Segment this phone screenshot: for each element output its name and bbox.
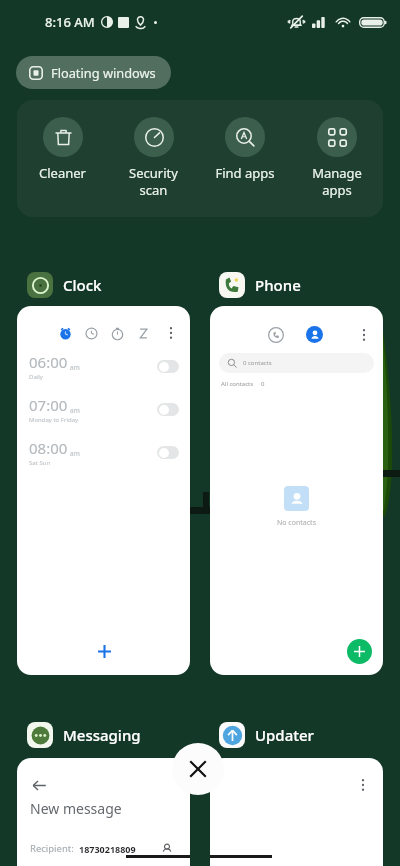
button[interactable]: Back xyxy=(32,778,47,793)
button[interactable]: Manage apps xyxy=(291,100,383,217)
staticText: All contacts xyxy=(221,380,254,388)
button[interactable]: Alarm xyxy=(17,306,190,675)
button[interactable]: 07:00 xyxy=(17,388,190,431)
staticText: Sat Sun xyxy=(29,459,51,467)
staticText: 18730218809 xyxy=(79,843,136,855)
button[interactable]: Dial pad xyxy=(268,327,284,343)
button[interactable]: More options xyxy=(210,758,383,866)
button[interactable]: Toggle alarm xyxy=(157,403,179,416)
button[interactable]: Alarm xyxy=(59,327,72,340)
staticText: Security scan xyxy=(129,164,178,199)
button[interactable]: Toggle alarm xyxy=(157,446,179,459)
staticText: 08:00 xyxy=(29,438,68,458)
button[interactable]: Messaging xyxy=(27,721,141,748)
staticText: Phone xyxy=(255,275,301,295)
staticText: 07:00 xyxy=(29,395,68,415)
staticText: Find apps xyxy=(215,164,275,182)
staticText: Cleaner xyxy=(39,164,86,182)
button[interactable]: Back xyxy=(17,758,190,866)
staticText: am xyxy=(70,363,80,372)
staticText: 0 xyxy=(261,380,265,388)
staticText: New message xyxy=(30,799,122,818)
button[interactable]: Security scan xyxy=(108,100,199,217)
staticText: No contacts xyxy=(277,518,316,528)
staticText: Daily xyxy=(29,373,43,381)
staticText: Floating windows xyxy=(51,64,156,81)
button[interactable]: More options xyxy=(357,328,371,342)
button[interactable]: Stopwatch xyxy=(111,327,124,340)
button[interactable]: 06:00 xyxy=(17,345,190,388)
staticText: 06:00 xyxy=(29,352,68,372)
button[interactable]: Close all xyxy=(172,743,224,795)
staticText: Updater xyxy=(255,725,314,745)
button[interactable]: Cleaner xyxy=(17,100,108,217)
button[interactable]: Clock xyxy=(27,271,102,298)
button[interactable]: Floating windows xyxy=(16,56,171,89)
staticText: Clock xyxy=(63,275,102,295)
staticText: am xyxy=(70,449,80,458)
button[interactable]: Dial pad xyxy=(210,306,383,675)
button[interactable]: 08:00 xyxy=(17,431,190,474)
staticText: 0 contacts xyxy=(243,359,272,367)
button[interactable]: More options xyxy=(164,326,178,340)
button[interactable]: Toggle alarm xyxy=(157,360,179,373)
staticText: Manage apps xyxy=(312,164,362,199)
staticText: Recipient: xyxy=(30,842,74,855)
button[interactable]: More options xyxy=(356,778,370,792)
button[interactable]: Add alarm xyxy=(86,633,122,669)
staticText: am xyxy=(70,406,80,415)
button[interactable]: Phone xyxy=(219,271,301,298)
button[interactable]: Updater xyxy=(219,721,314,748)
staticText: Messaging xyxy=(63,725,141,745)
button[interactable]: Clock xyxy=(85,327,98,340)
button[interactable]: Find apps xyxy=(199,100,291,217)
button[interactable]: Contacts xyxy=(306,326,323,343)
button[interactable]: 0 contacts xyxy=(219,353,374,373)
staticText: Monday to Friday xyxy=(29,416,79,424)
staticText: 8:16 AM xyxy=(45,13,95,31)
button[interactable]: Add contact xyxy=(347,639,372,664)
button[interactable]: Timer xyxy=(137,327,150,340)
